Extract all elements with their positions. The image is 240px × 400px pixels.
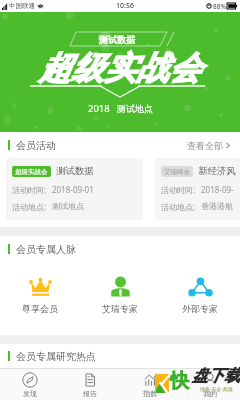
button[interactable]: 报告 bbox=[60, 369, 120, 400]
staticText: 报告 bbox=[83, 389, 97, 398]
staticText: 艾瑞专家 bbox=[102, 303, 138, 314]
staticText: 尊享会员 bbox=[22, 303, 58, 314]
staticText: 测试地点 bbox=[52, 201, 84, 211]
staticText: 绿色·安全·高速 bbox=[200, 386, 233, 393]
staticText: 新经济风 bbox=[198, 165, 236, 177]
button[interactable]: 我的 bbox=[180, 369, 240, 400]
staticText: 艾瑞峰会 bbox=[164, 168, 190, 176]
button[interactable]: 外部专家 bbox=[160, 276, 240, 314]
staticText: 超级实战会 bbox=[15, 168, 48, 176]
staticText: 查看全部 bbox=[187, 140, 223, 151]
button[interactable]: 艾瑞专家 bbox=[80, 276, 160, 314]
staticText: 外部专家 bbox=[182, 303, 218, 314]
staticText: 发现 bbox=[23, 389, 37, 398]
button[interactable]: 超级实战会 bbox=[6, 158, 143, 220]
staticText: 2018-09- bbox=[201, 184, 234, 195]
button[interactable]: 指数 bbox=[120, 369, 180, 400]
staticText: 超级实战会 bbox=[39, 48, 202, 88]
staticText: 2018 bbox=[88, 102, 110, 115]
staticText: 活动地点: bbox=[12, 201, 47, 212]
staticText: 我的 bbox=[203, 389, 217, 398]
staticText: 88% bbox=[213, 2, 226, 11]
staticText: 10:56 bbox=[116, 1, 134, 11]
button[interactable]: 发现 bbox=[0, 369, 60, 400]
staticText: 活动时间: bbox=[12, 184, 47, 195]
staticText: 会员专属人脉 bbox=[16, 243, 76, 256]
staticText: 2018-09-01 bbox=[52, 184, 94, 195]
staticText: 会员专属研究热点 bbox=[16, 350, 96, 363]
staticText: 活动地点: bbox=[161, 201, 196, 212]
button[interactable]: 尊享会员 bbox=[0, 276, 80, 314]
button[interactable]: 艾瑞峰会 bbox=[155, 158, 240, 220]
staticText: 活动时间: bbox=[161, 184, 196, 195]
staticText: 盘下载 bbox=[192, 366, 240, 386]
button[interactable]: 查看全部 bbox=[185, 137, 232, 154]
staticText: 指数 bbox=[143, 389, 157, 398]
staticText: 会员活动 bbox=[16, 139, 56, 152]
staticText: 测试数据 bbox=[99, 34, 135, 45]
staticText: 香港港航 bbox=[201, 201, 233, 211]
staticText: 中国联通 bbox=[9, 2, 35, 10]
staticText: 快 bbox=[170, 369, 189, 393]
staticText: 测试地点 bbox=[117, 103, 153, 114]
staticText: 测试数据 bbox=[56, 165, 94, 177]
